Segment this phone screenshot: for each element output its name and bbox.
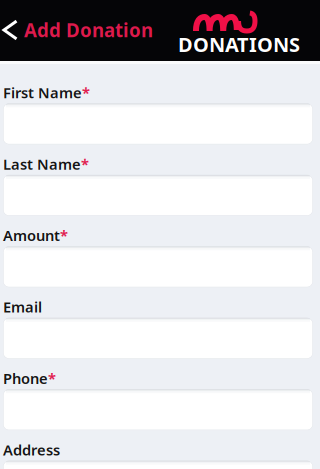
staticText: DONATIONS (178, 31, 300, 58)
staticText: Email (3, 297, 42, 317)
button[interactable]: First Name (3, 103, 313, 144)
button[interactable]: Email (3, 318, 313, 359)
staticText: Amount (3, 226, 60, 245)
button[interactable]: Back to donations (0, 8, 155, 52)
staticText: Phone (3, 369, 48, 388)
staticText: Address (3, 440, 60, 459)
button[interactable]: Phone (3, 389, 313, 430)
button[interactable]: Last Name (3, 175, 313, 216)
staticText: Add Donation (24, 18, 153, 42)
staticText: Last Name (3, 154, 81, 174)
button[interactable]: Amount (3, 246, 313, 287)
staticText: * (48, 369, 56, 388)
button[interactable]: Address (3, 461, 313, 469)
button[interactable]: MMD Donations home (178, 9, 300, 58)
staticText: * (82, 83, 90, 102)
staticText: First Name (3, 83, 82, 102)
staticText: * (60, 226, 68, 245)
staticText: * (81, 154, 89, 174)
